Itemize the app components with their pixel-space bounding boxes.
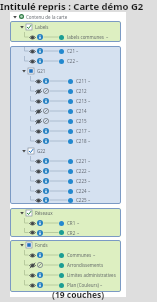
staticText: – <box>93 252 96 258</box>
staticText: G22 <box>37 148 46 154</box>
button[interactable]: Communes <box>10 250 121 260</box>
staticText: C223 <box>76 178 87 184</box>
staticText: C224 <box>76 188 87 194</box>
staticText: – <box>88 178 91 184</box>
button[interactable]: Labels <box>10 21 121 32</box>
staticText: labels communes <box>67 34 105 40</box>
button[interactable]: C215 <box>10 116 121 126</box>
staticText: C211 <box>76 78 87 84</box>
button[interactable]: Fonds <box>10 240 121 250</box>
button[interactable]: Arrondissements <box>10 260 121 270</box>
staticText: – <box>88 138 91 144</box>
button[interactable]: CR2 <box>10 228 121 237</box>
staticText: Fonds <box>35 242 48 248</box>
staticText: C225 <box>76 197 87 203</box>
staticText: – <box>76 48 79 54</box>
staticText: – <box>77 230 80 236</box>
button[interactable]: C22 <box>10 56 121 66</box>
button[interactable]: Contenu de la carte <box>10 12 126 21</box>
staticText: C218 <box>76 138 87 144</box>
staticText: – <box>88 78 91 84</box>
staticText: C22 <box>67 58 75 64</box>
button[interactable]: Limites administratives <box>10 270 121 280</box>
staticText: Labels <box>35 24 49 30</box>
staticText: – <box>88 98 91 104</box>
staticText: – <box>88 128 91 134</box>
button[interactable]: C212 <box>10 86 121 96</box>
button[interactable]: C223 <box>10 176 121 186</box>
staticText: Communes <box>67 252 92 258</box>
staticText: Contenu de la carte <box>26 14 68 20</box>
staticText: (19 couches) <box>52 289 105 301</box>
button[interactable]: C222 <box>10 166 121 176</box>
button[interactable]: G22 <box>10 146 121 156</box>
staticText: C214 <box>76 108 87 114</box>
staticText: – <box>88 188 91 194</box>
staticText: Limites administratives <box>67 272 116 278</box>
staticText: C221 <box>76 158 87 164</box>
staticText: G21 <box>37 68 46 74</box>
button[interactable]: Réseaux <box>10 208 121 218</box>
button[interactable]: C224 <box>10 186 121 196</box>
button[interactable]: C218 <box>10 136 121 146</box>
staticText: – <box>88 158 91 164</box>
button[interactable]: Plan (Couleurs) <box>10 280 121 290</box>
button[interactable]: C221 <box>10 156 121 166</box>
staticText: C215 <box>76 118 87 124</box>
staticText: Intitulé repris : Carte démo G2 <box>0 0 144 12</box>
staticText: Plan (Couleurs) <box>67 282 99 288</box>
staticText: C21 <box>67 48 75 54</box>
staticText: – <box>88 168 91 174</box>
staticText: CR2 <box>67 230 76 236</box>
staticText: C212 <box>76 88 87 94</box>
button[interactable]: C213 <box>10 96 121 106</box>
button[interactable]: C217 <box>10 126 121 136</box>
staticText: Réseaux <box>35 210 53 216</box>
staticText: – <box>76 58 79 64</box>
staticText: – <box>88 197 91 203</box>
button[interactable]: C21 <box>10 46 121 56</box>
staticText: – <box>100 282 103 288</box>
button[interactable]: G21 <box>10 66 121 76</box>
staticText: C217 <box>76 128 87 134</box>
staticText: Arrondissements <box>67 262 104 268</box>
staticText: C222 <box>76 168 87 174</box>
button[interactable]: CR1 <box>10 218 121 228</box>
button[interactable]: C214 <box>10 106 121 116</box>
button[interactable]: C211 <box>10 76 121 86</box>
button[interactable]: labels communes <box>10 32 121 42</box>
staticText: CR1 <box>67 220 76 226</box>
staticText: – <box>77 220 80 226</box>
staticText: – <box>106 34 109 40</box>
staticText: C213 <box>76 98 87 104</box>
button[interactable]: C225 <box>10 196 121 204</box>
